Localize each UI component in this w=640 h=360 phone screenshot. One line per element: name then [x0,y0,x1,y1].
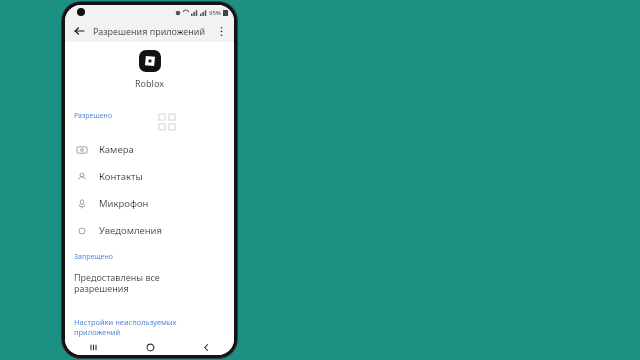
staticText: Предоставлены все разрешения [74,271,160,295]
button[interactable]: Ещё [212,22,230,40]
button[interactable]: Настройки неиспользуемых приложений [65,317,234,337]
button[interactable]: Назад [70,22,88,40]
button[interactable]: Контакты [65,163,234,190]
staticText: Разрешено [74,111,113,121]
staticText: Уведомления [99,224,162,237]
button[interactable]: Последние приложения [65,339,122,355]
button[interactable]: Камера [65,136,234,163]
staticText: Запрещено [74,252,113,262]
staticText: Разрешения приложений [93,25,205,37]
staticText: Настройки неиспользуемых приложений [74,317,177,337]
button[interactable]: Микрофон [65,190,234,217]
staticText: 95% [209,9,221,17]
staticText: Контакты [99,170,143,183]
staticText: Roblox [135,77,164,89]
button[interactable]: Уведомления [65,217,234,244]
button[interactable]: Назад [178,339,234,355]
staticText: Камера [99,143,134,156]
staticText: Микрофон [99,197,149,210]
button[interactable]: Предоставлены все разрешения [65,271,234,295]
button[interactable]: Главный экран [122,339,178,355]
